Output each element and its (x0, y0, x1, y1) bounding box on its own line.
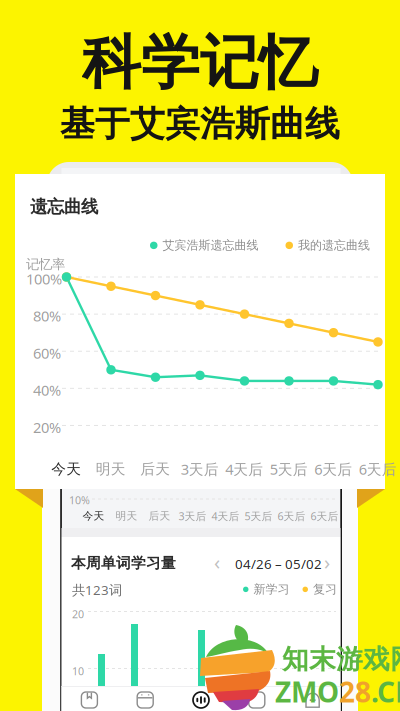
button[interactable]: 统计 (173, 688, 229, 711)
staticText: 3天后 (178, 509, 206, 523)
staticText: 60% (33, 343, 61, 363)
staticText: 6天后 (359, 459, 397, 479)
staticText: 4天后 (211, 509, 239, 523)
button[interactable]: 6天后 (308, 508, 341, 524)
staticText: 20% (33, 417, 61, 437)
button[interactable]: 4天后 (209, 508, 242, 524)
staticText: 遗忘曲线 (30, 196, 98, 217)
staticText: 本周单词学习量 (71, 554, 176, 572)
staticText: 6天后 (277, 509, 305, 523)
staticText: .CN (371, 673, 400, 710)
staticText: 基于艾宾浩斯曲线 (60, 103, 340, 145)
staticText: 复习 (313, 582, 337, 597)
button[interactable]: 后天 (133, 456, 177, 482)
button[interactable]: 今天 (44, 456, 88, 482)
button[interactable]: 今天 (77, 508, 110, 524)
staticText: 5天后 (270, 459, 308, 479)
staticText: ‹ (214, 549, 220, 575)
staticText: 2 (339, 673, 355, 710)
button[interactable]: 6天后 (311, 456, 355, 482)
staticText: 知末游戏网 (282, 643, 400, 676)
button[interactable]: 明天 (88, 456, 133, 482)
staticText: 20 (72, 607, 84, 621)
staticText: 艾宾浩斯遗忘曲线 (162, 238, 258, 253)
staticText: 新学习 (253, 582, 289, 597)
staticText: 4天后 (225, 459, 263, 479)
button[interactable]: 6天后 (355, 456, 400, 482)
button[interactable]: 3天后 (176, 508, 209, 524)
staticText: 明天 (96, 460, 126, 478)
button[interactable]: 4天后 (222, 456, 266, 482)
staticText: 共123词 (72, 581, 122, 599)
button[interactable]: 我的 (285, 688, 340, 711)
staticText: 6天后 (314, 459, 352, 479)
staticText: 后天 (140, 460, 170, 478)
staticText: 100% (26, 269, 62, 288)
staticText: 科学记忆 (82, 27, 318, 99)
staticText: ZMO (275, 673, 339, 710)
staticText: 04/26 – 05/02 (235, 555, 322, 573)
staticText: 6天后 (310, 509, 338, 523)
button[interactable]: 计划 (117, 688, 173, 711)
button[interactable]: 明天 (110, 508, 143, 524)
staticText: 后天 (148, 509, 170, 522)
staticText: 80% (33, 306, 61, 326)
staticText: 今天 (82, 509, 104, 522)
button[interactable]: 3天后 (177, 456, 222, 482)
staticText: 5天后 (244, 509, 272, 523)
button[interactable]: 词库 (61, 688, 117, 711)
staticText: 10% (69, 493, 90, 507)
staticText: 明天 (115, 509, 137, 522)
button[interactable]: 6天后 (275, 508, 308, 524)
staticText: 我的遗忘曲线 (298, 238, 370, 253)
staticText: 40% (33, 380, 61, 400)
button[interactable]: 后天 (143, 508, 176, 524)
staticText: 8 (355, 673, 371, 710)
staticText: › (324, 549, 330, 575)
staticText: 记忆率 (26, 256, 65, 272)
staticText: 今天 (51, 460, 81, 478)
button[interactable]: 上一周 (210, 553, 224, 571)
staticText: 10 (72, 664, 84, 678)
staticText: 3天后 (181, 459, 219, 479)
button[interactable]: 笔记 (229, 688, 285, 711)
button[interactable]: 5天后 (266, 456, 311, 482)
button[interactable]: 下一周 (320, 553, 334, 571)
button[interactable]: 5天后 (242, 508, 275, 524)
